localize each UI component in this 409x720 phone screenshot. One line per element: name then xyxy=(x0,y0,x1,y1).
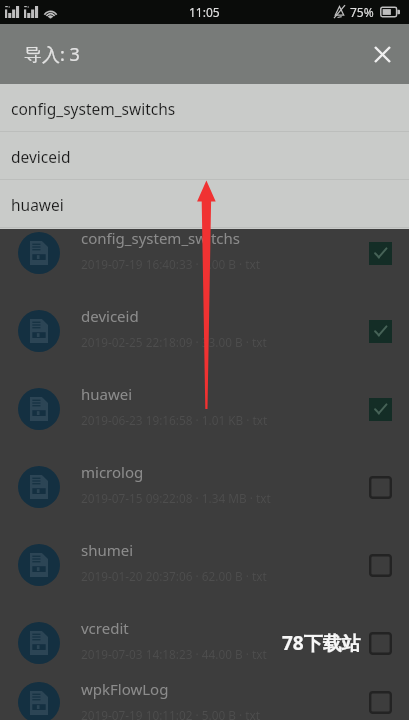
button[interactable]: Select file xyxy=(355,462,405,512)
button[interactable]: deviceid xyxy=(0,132,409,180)
staticText: microlog xyxy=(81,462,144,482)
button[interactable]: Select file xyxy=(355,384,405,434)
staticText: config_system_switchs xyxy=(11,98,176,119)
button[interactable]: Select file xyxy=(355,228,405,278)
button[interactable]: Select file xyxy=(355,682,405,720)
button[interactable]: microlog xyxy=(0,445,409,523)
staticText: 78下载站 xyxy=(282,630,361,656)
staticText: 75% xyxy=(350,4,374,20)
staticText: deviceid xyxy=(11,146,71,167)
button[interactable]: config_system_switchs xyxy=(0,84,409,132)
staticText: 2019-07-15 09:22:08 · 1.34 MB · txt xyxy=(81,490,271,506)
staticText: 2019-01-20 20:37:06 · 62.00 B · txt xyxy=(81,568,267,584)
button[interactable]: vcredit xyxy=(0,601,409,679)
staticText: wpkFlowLog xyxy=(81,679,169,699)
staticText: vcredit xyxy=(81,618,129,638)
button[interactable]: Select file xyxy=(355,540,405,590)
staticText: huawei xyxy=(81,384,133,404)
staticText: 2019-07-03 14:18:23 · 44.00 B · txt xyxy=(81,646,267,662)
button[interactable]: Select file xyxy=(355,306,405,356)
staticText: 导入: 3 xyxy=(24,42,80,67)
staticText: 2019-06-23 19:16:58 · 1.01 KB · txt xyxy=(81,412,268,428)
button[interactable]: shumei xyxy=(0,523,409,601)
staticText: huawei xyxy=(11,194,64,215)
button[interactable]: huawei xyxy=(0,180,409,228)
staticText: 2019-07-19 10:11:02 · 5.00 B · txt xyxy=(81,707,260,720)
staticText: 2019-07-19 16:40:33 · 1.00 B · txt xyxy=(81,256,260,272)
button[interactable]: Close xyxy=(358,30,406,78)
button[interactable]: wpkFlowLog xyxy=(0,679,409,720)
staticText: 11:05 xyxy=(189,4,220,20)
staticText: deviceid xyxy=(81,306,139,326)
button[interactable]: Select file xyxy=(355,618,405,668)
button[interactable]: deviceid xyxy=(0,289,409,367)
staticText: shumei xyxy=(81,540,134,560)
staticText: 2019-02-25 22:18:09 · 33.00 B · txt xyxy=(81,334,267,350)
button[interactable]: huawei xyxy=(0,367,409,445)
button[interactable]: config_system_switchs xyxy=(0,211,409,289)
staticText: config_system_switchs xyxy=(81,228,240,248)
